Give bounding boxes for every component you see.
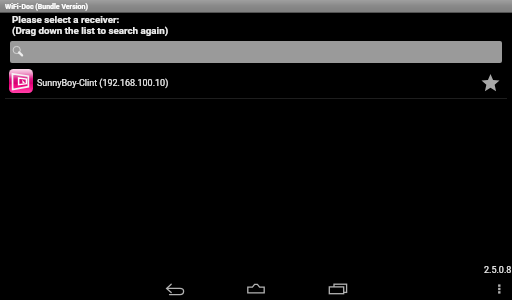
button[interactable]: More options <box>488 274 511 297</box>
button[interactable]: Recent apps <box>321 272 353 300</box>
button[interactable]: Search <box>10 41 502 63</box>
staticText: (Drag down the list to search again) <box>12 25 169 36</box>
staticText: Please select a receiver: <box>12 14 120 25</box>
button[interactable]: Back <box>159 272 191 300</box>
button[interactable]: SunnyBoy-Clint (192.168.100.10) <box>0 64 512 98</box>
staticText: WiFi-Doc (Bundle Version) <box>5 3 88 11</box>
staticText: 2.5.0.8 <box>484 265 512 276</box>
button[interactable]: Home <box>240 272 272 300</box>
staticText: SunnyBoy-Clint (192.168.100.10) <box>37 78 169 89</box>
